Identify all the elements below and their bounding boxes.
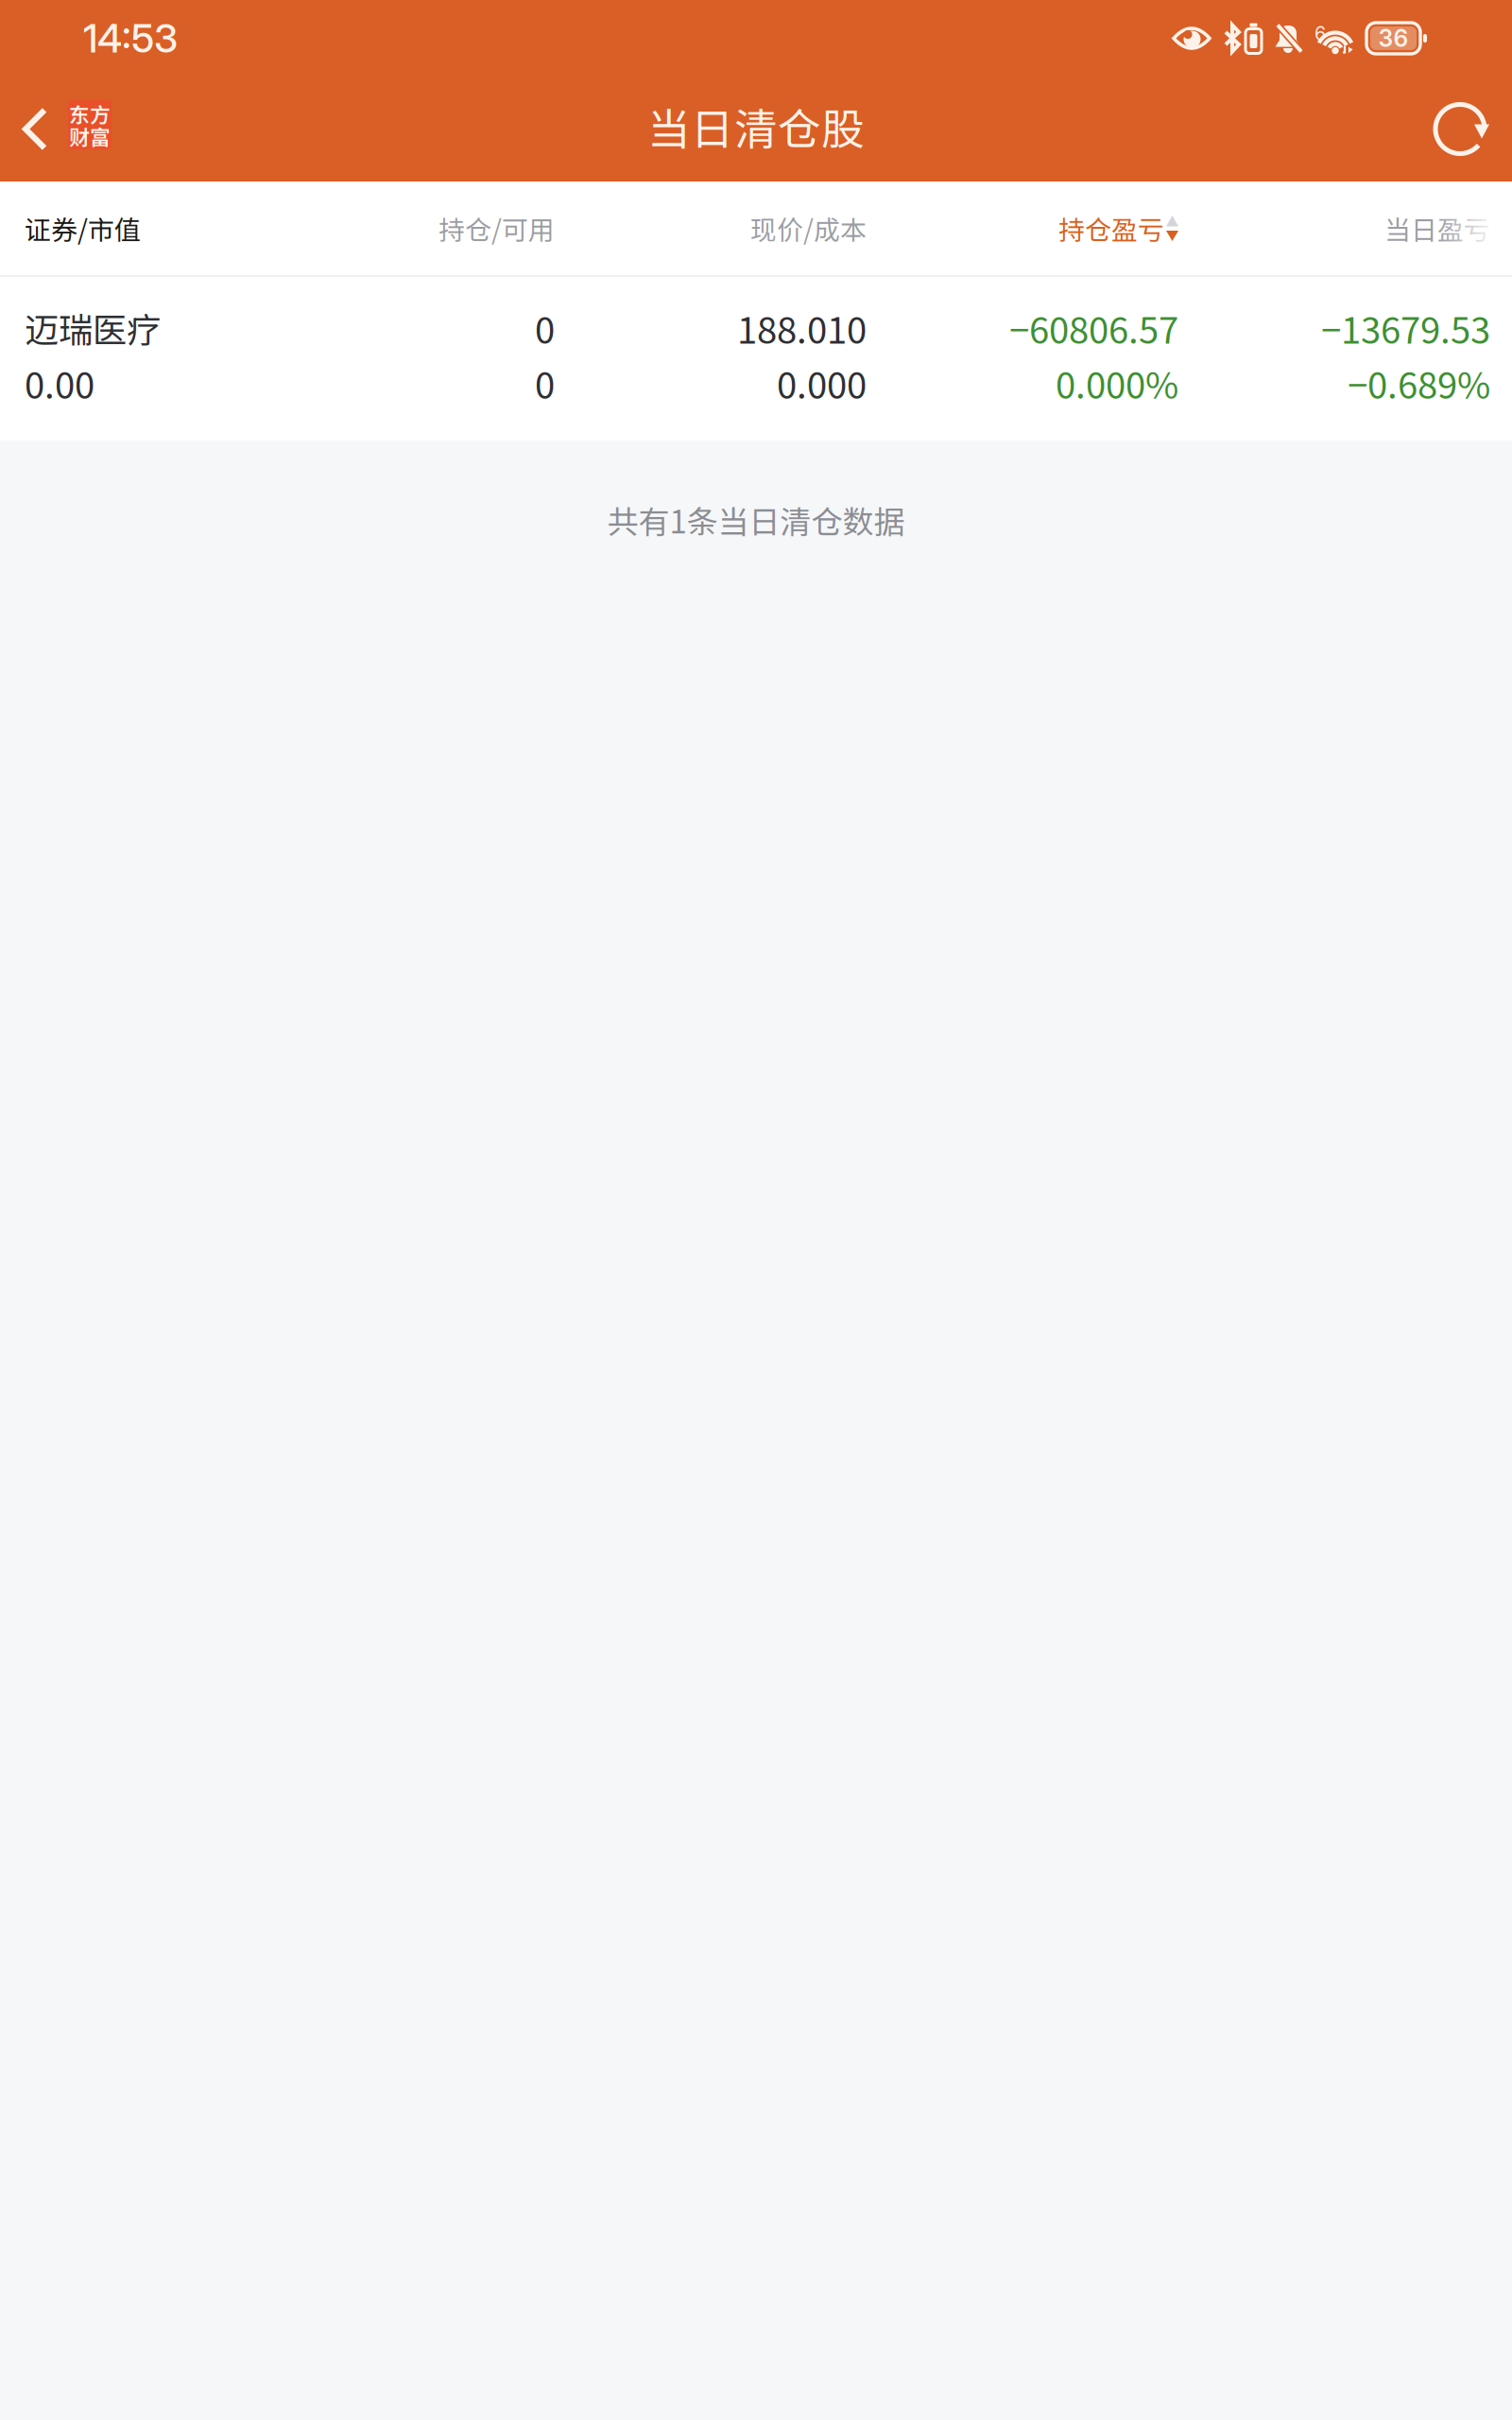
button[interactable]: 持仓/可用 xyxy=(243,181,555,275)
staticText: 0.000 xyxy=(777,357,867,409)
staticText: 东方 xyxy=(69,99,111,128)
staticText: 持仓盈亏 xyxy=(1058,209,1164,247)
staticText: 迈瑞医疗 xyxy=(25,303,161,353)
staticText: 持仓/可用 xyxy=(438,209,555,247)
button[interactable]: 迈瑞医疗 xyxy=(0,277,1512,440)
staticText: 当日盈亏 xyxy=(1384,209,1490,247)
staticText: −13679.53 xyxy=(1321,302,1490,354)
button[interactable]: Refresh xyxy=(1417,77,1512,181)
staticText: 0 xyxy=(535,302,555,354)
staticText: 当日清仓股 xyxy=(647,95,865,157)
button[interactable]: 现价/成本 xyxy=(555,181,867,275)
button[interactable]: 持仓盈亏 xyxy=(867,181,1178,275)
button[interactable]: 当日盈亏 xyxy=(1178,181,1490,275)
staticText: 0.00 xyxy=(25,357,94,409)
staticText: 0 xyxy=(535,357,555,409)
staticText: 证券/市值 xyxy=(25,209,141,247)
staticText: 现价/成本 xyxy=(750,209,867,247)
staticText: 36 xyxy=(1378,24,1409,52)
staticText: 财富 xyxy=(69,121,111,151)
staticText: −0.689% xyxy=(1348,357,1490,409)
staticText: 6 xyxy=(1314,22,1326,45)
staticText: 14:53 xyxy=(83,15,178,62)
button[interactable]: Back xyxy=(0,77,125,181)
staticText: −60806.57 xyxy=(1009,302,1178,354)
staticText: 共有1条当日清仓数据 xyxy=(607,497,905,542)
staticText: 188.010 xyxy=(737,302,867,354)
staticText: 0.000% xyxy=(1056,357,1178,409)
